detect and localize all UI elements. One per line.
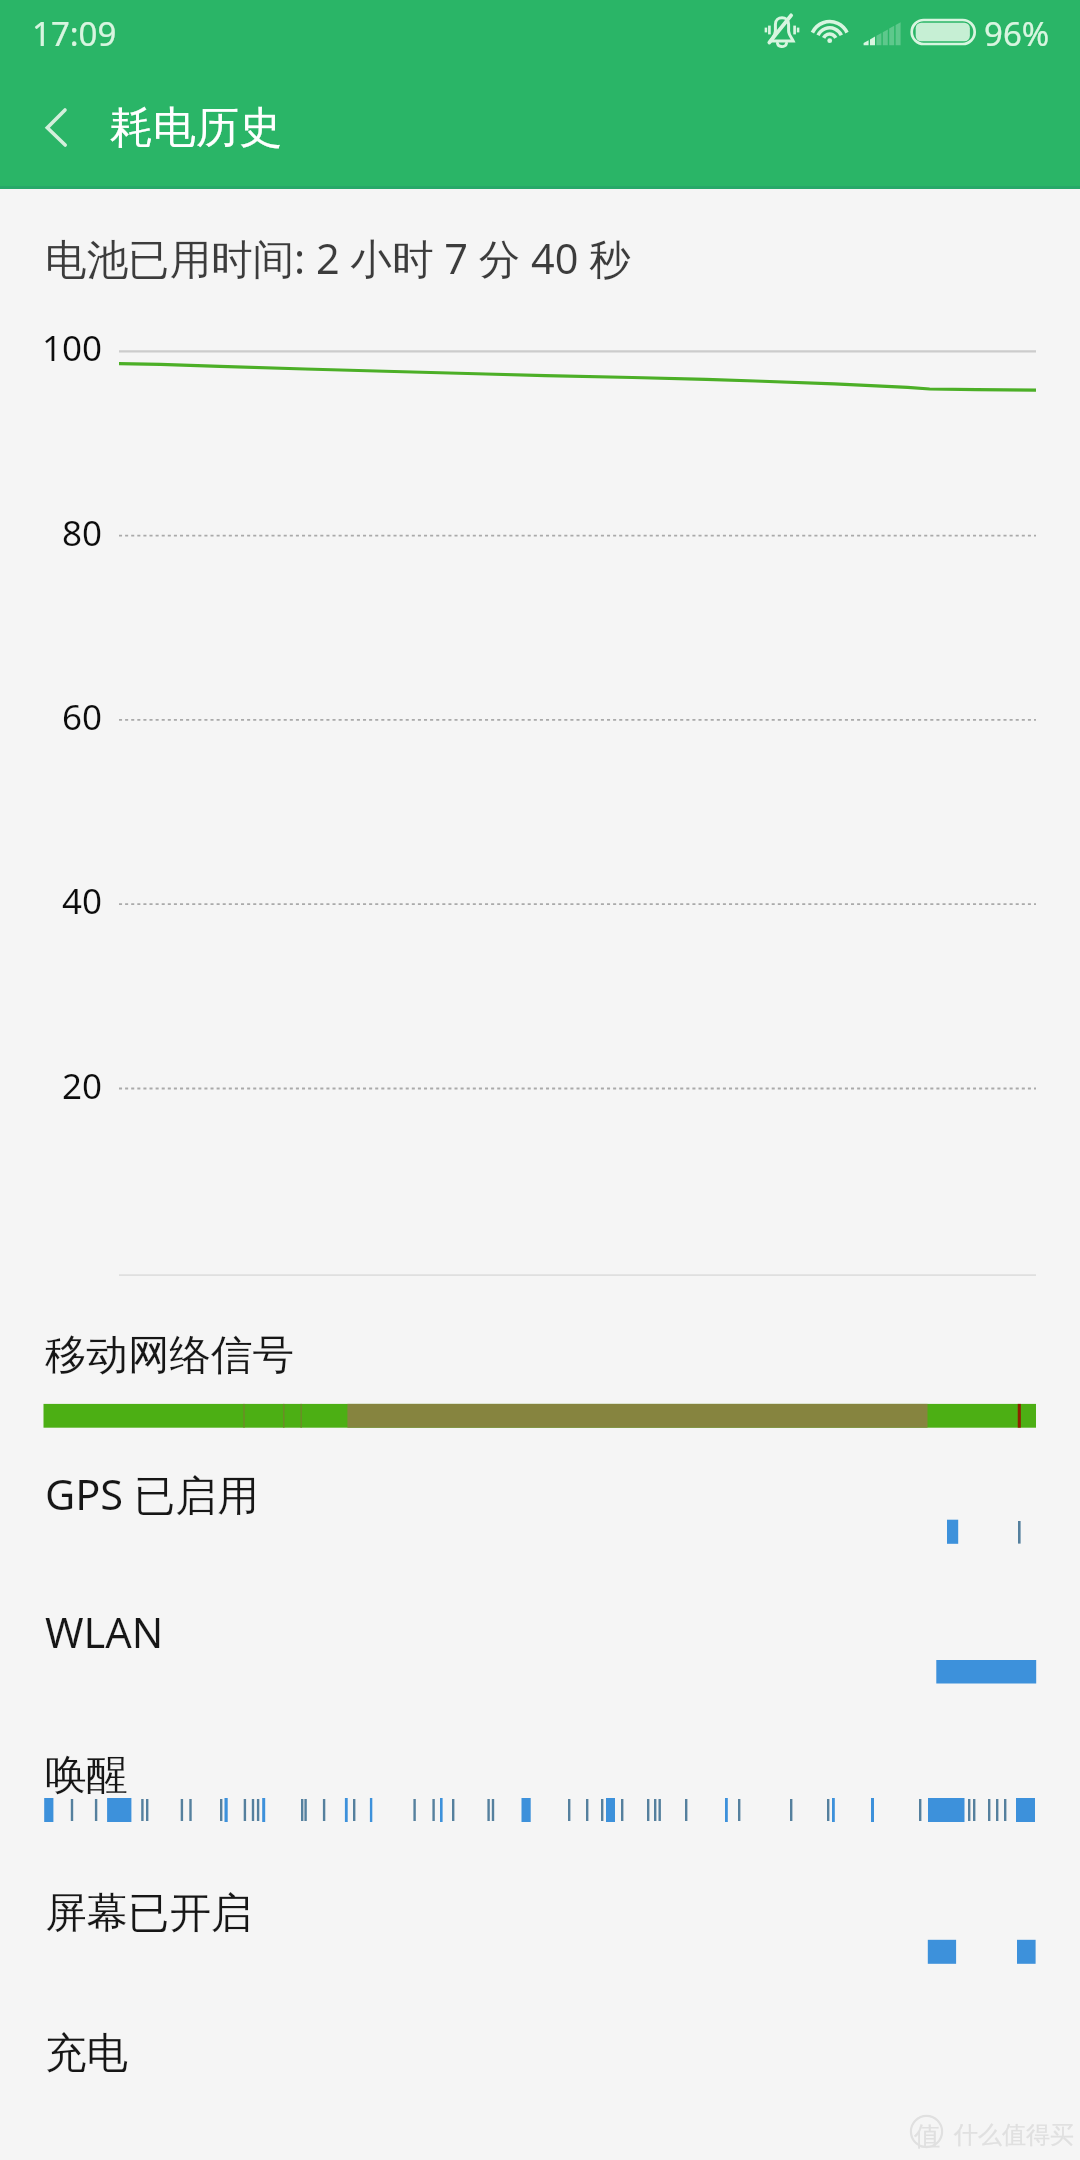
staticText: 耗电历史 — [110, 101, 282, 155]
staticText: 唤醒 — [45, 1749, 128, 1801]
staticText: WLAN — [45, 1604, 164, 1661]
button[interactable]: 移动网络信号 — [30, 1315, 1080, 1383]
staticText: 60 — [0, 693, 102, 741]
staticText: 值 — [914, 2120, 940, 2153]
staticText: 100 — [0, 324, 102, 372]
button[interactable]: 充电 — [30, 2013, 1080, 2081]
staticText: 80 — [0, 509, 102, 557]
staticText: 移动网络信号 — [45, 1329, 294, 1381]
staticText: GPS 已启用 — [45, 1466, 259, 1523]
staticText: 屏幕已开启 — [45, 1887, 253, 1939]
staticText: 电池已用时间: 2 小时 7 分 40 秒 — [45, 230, 631, 287]
button[interactable]: GPS 已启用 — [30, 1452, 1080, 1520]
staticText: 20 — [0, 1062, 102, 1110]
button[interactable]: 屏幕已开启 — [30, 1873, 1080, 1941]
staticText: 什么值得买 — [954, 2120, 1074, 2150]
staticText: 充电 — [45, 2027, 128, 2079]
staticText: 17:09 — [32, 11, 117, 56]
staticText: 40 — [0, 877, 102, 925]
staticText: 96% — [984, 11, 1050, 56]
button[interactable]: 唤醒 — [30, 1735, 1080, 1803]
button[interactable]: Back — [16, 90, 96, 170]
button[interactable]: WLAN — [30, 1590, 1080, 1658]
